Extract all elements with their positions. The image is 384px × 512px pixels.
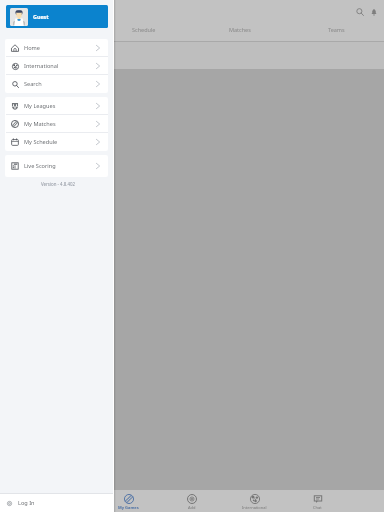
button[interactable]: Log In: [0, 494, 113, 512]
staticText: Matches: [229, 26, 251, 33]
staticText: Chat: [313, 505, 322, 510]
staticText: International: [242, 505, 267, 510]
staticText: International: [24, 62, 59, 70]
staticText: Search: [24, 80, 42, 88]
staticText: Log In: [18, 499, 35, 507]
button[interactable]: Chat: [286, 490, 349, 512]
button[interactable]: My Games: [97, 490, 160, 512]
button[interactable]: Matches: [192, 18, 288, 41]
button[interactable]: Notifications: [367, 5, 381, 19]
staticText: Home: [24, 44, 40, 52]
button[interactable]: Search: [353, 5, 367, 19]
staticText: Add: [188, 505, 196, 510]
button[interactable]: Search: [5, 75, 108, 93]
staticText: My Matches: [24, 120, 56, 128]
button[interactable]: Guest: [6, 5, 108, 28]
button[interactable]: International: [5, 57, 108, 75]
staticText: Guest: [33, 13, 49, 20]
staticText: Teams: [328, 26, 345, 33]
button[interactable]: Schedule: [96, 18, 192, 41]
button[interactable]: International: [223, 490, 286, 512]
staticText: Version - 4.8.402: [3, 181, 113, 187]
button[interactable]: My Matches: [5, 115, 108, 133]
button[interactable]: Home: [5, 39, 108, 57]
button[interactable]: Live Scoring: [5, 157, 108, 175]
staticText: My Leagues: [24, 102, 56, 110]
staticText: Live Scoring: [24, 162, 56, 170]
staticText: My Games: [118, 505, 139, 510]
button[interactable]: My Schedule: [5, 133, 108, 151]
staticText: My Schedule: [24, 138, 58, 146]
staticText: Schedule: [132, 26, 156, 33]
button[interactable]: My Leagues: [5, 97, 108, 115]
button[interactable]: Add: [160, 490, 223, 512]
button[interactable]: Teams: [288, 18, 384, 41]
